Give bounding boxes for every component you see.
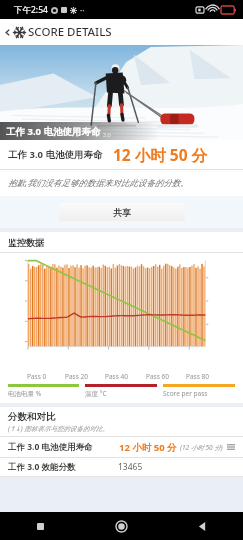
staticText: (↑↓) 图标表示与您的设备的对比。 (8, 424, 109, 433)
staticText: 电池电量 % (8, 389, 42, 398)
staticText: Pass 60 (146, 372, 169, 381)
staticText: 共享 (113, 207, 131, 218)
button[interactable]: 电池电量 % (8, 384, 79, 398)
button[interactable]: Home (81, 512, 162, 540)
button[interactable]: 共享 (59, 203, 185, 221)
staticText: 工作 3.0 电池使用寿命 (8, 441, 93, 453)
button[interactable]: Recent apps (0, 512, 81, 540)
button[interactable]: SCORE DETAILS (28, 19, 243, 45)
staticText: 3.0 (103, 131, 111, 138)
other: More (227, 443, 235, 451)
staticText: 工作 3.0 效能分数 (8, 461, 76, 473)
staticText: Score per pass (163, 389, 208, 398)
staticText: 13465 (118, 461, 143, 473)
staticText: 12 小时 50 分 (113, 144, 208, 165)
button[interactable]: 工作 3.0 电池使用寿命 (8, 437, 235, 457)
staticText: (12 小时 50 分) (180, 443, 223, 452)
staticText: 温度 °C (85, 389, 107, 398)
button[interactable]: 温度 °C (85, 384, 157, 398)
staticText: Pass 20 (65, 372, 88, 381)
staticText: 下午2:54 (14, 4, 48, 16)
staticText: ·· (80, 5, 85, 16)
button[interactable]: Back (0, 22, 32, 43)
button[interactable]: 工作 3.0 效能分数 (8, 458, 235, 476)
staticText: Pass 40 (105, 372, 128, 381)
button[interactable]: Score per pass (163, 384, 235, 398)
staticText: 工作 3.0 电池使用寿命 (8, 148, 103, 161)
staticText: 工作 3.0 电池使用寿命 (6, 125, 101, 138)
staticText: SCORE DETAILS (28, 24, 112, 40)
staticText: Pass 80 (186, 372, 209, 381)
staticText: 分数和对比 (8, 411, 56, 423)
button[interactable]: Back (162, 512, 243, 540)
staticText: Pass 0 (27, 372, 47, 381)
staticText: 12 小时 50 分 (119, 441, 177, 454)
staticText: 抱歉,我们没有足够的数据来对比此设备的分数。 (8, 177, 189, 189)
staticText: 监控数据 (8, 237, 44, 248)
